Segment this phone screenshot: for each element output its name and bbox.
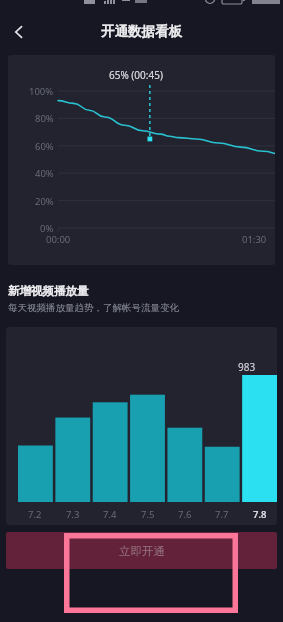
button[interactable]: Back (4, 17, 34, 47)
staticText: 7.6 (178, 508, 192, 521)
staticText: 新增视频播放量 (8, 284, 89, 298)
staticText: 7.2 (28, 508, 42, 521)
staticText: 立即开通 (119, 544, 165, 558)
button[interactable]: 立即开通 (6, 532, 277, 569)
staticText: 7.4 (103, 508, 117, 521)
staticText: 100% (29, 85, 54, 98)
staticText: 7.5 (141, 508, 155, 521)
staticText: 00:00 (46, 233, 71, 246)
staticText: 7.8 (253, 508, 267, 521)
staticText: 开通数据看板 (101, 23, 182, 40)
staticText: 7.7 (215, 508, 229, 521)
staticText: 20% (35, 195, 54, 208)
staticText: 每天视频播放量趋势，了解帐号流量变化 (8, 302, 179, 314)
staticText: 65% (00:45) (109, 68, 163, 82)
staticText: 983 (238, 360, 256, 374)
staticText: 40% (35, 167, 54, 180)
staticText: 01:30 (242, 233, 267, 246)
staticText: 80% (35, 112, 54, 125)
staticText: 0% (40, 222, 54, 235)
staticText: 7.3 (66, 508, 80, 521)
staticText: 60% (35, 140, 54, 153)
